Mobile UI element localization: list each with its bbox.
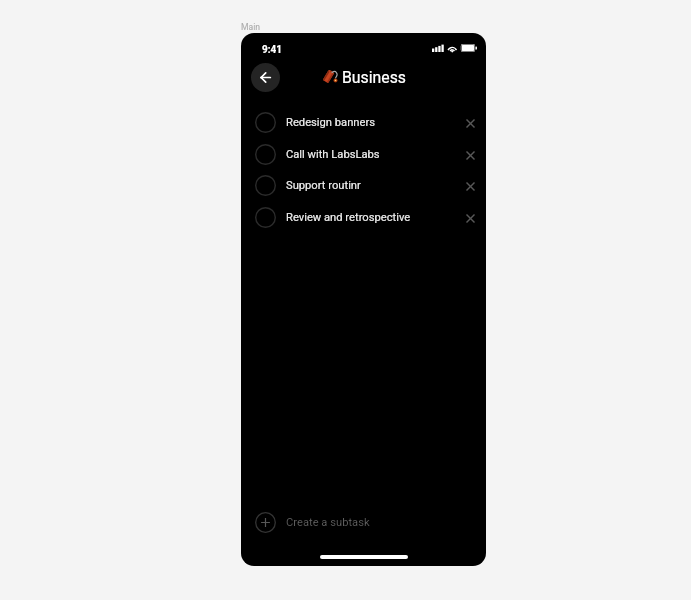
staticText: Redesign banners [286, 116, 376, 129]
staticText: Support routinr [286, 179, 361, 192]
staticText: Review and retrospective [286, 211, 411, 224]
button[interactable]: Remove Redesign banners [459, 112, 481, 134]
staticText: Business [342, 68, 406, 87]
staticText: Main [241, 22, 261, 32]
button[interactable]: Review and retrospective [241, 202, 486, 233]
button[interactable]: Remove Review and retrospective [459, 207, 481, 229]
staticText: Create a subtask [286, 516, 370, 529]
button[interactable]: Redesign banners [241, 107, 486, 138]
staticText: Call with LabsLabs [286, 148, 380, 161]
button[interactable]: Remove Support routinr [459, 175, 481, 197]
staticText: 9:41 [262, 44, 283, 56]
button[interactable]: Support routinr [241, 170, 486, 201]
button[interactable]: Create a subtask [241, 507, 486, 538]
button[interactable]: Back [251, 63, 280, 92]
button[interactable]: Call with LabsLabs [241, 139, 486, 170]
button[interactable]: Remove Call with LabsLabs [459, 144, 481, 166]
